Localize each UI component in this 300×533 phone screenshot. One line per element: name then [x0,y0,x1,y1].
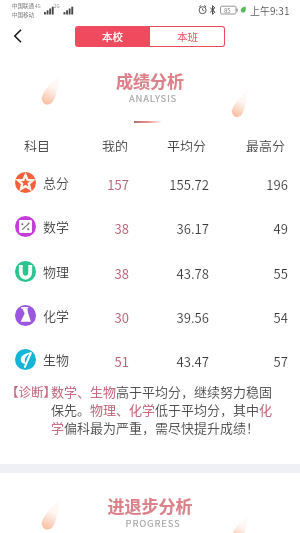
staticText: 上午9:31 [250,3,290,17]
button[interactable]: Back [6,24,30,48]
staticText: 数学 [43,217,70,236]
staticText: 36.17 [0,219,209,238]
staticText: 51 [0,352,129,371]
staticText: 55 [0,264,288,283]
staticText: 155.72 [0,175,209,194]
staticText: 物理 [43,262,70,281]
staticText: 生物 [43,350,70,369]
staticText: 39.56 [0,308,209,327]
staticText: 43.78 [0,264,209,283]
staticText: 化学 [43,306,70,325]
staticText: 平均分 [167,136,207,152]
staticText: 196 [0,175,288,194]
staticText: 进退步分析 [0,493,300,518]
staticText: 38 [0,264,129,283]
button[interactable]: 物理 [0,249,300,293]
button[interactable]: 数学 [0,204,300,248]
button[interactable]: 总分 [0,160,300,204]
staticText: ANALYSIS [3,91,300,105]
staticText: 最高分 [246,136,286,152]
staticText: 中国联通 [12,2,35,10]
staticText: 4G [35,3,41,10]
staticText: 38 [0,219,129,238]
staticText: 成绩分析 [0,68,300,93]
staticText: 科目 [24,136,51,152]
staticText: 本班 [177,29,198,44]
staticText: 中国移动 [12,11,35,19]
staticText: 【诊断】 [6,382,57,400]
button[interactable]: 化学 [0,293,300,337]
staticText: 本校 [102,29,123,44]
staticText: 43.47 [0,352,209,371]
staticText: 49 [0,219,288,238]
staticText: 57 [0,352,288,371]
staticText: 54 [0,308,288,327]
staticText: 30 [0,308,129,327]
button[interactable]: 本班 [150,27,224,46]
button[interactable]: 生物 [0,337,300,381]
staticText: 数学、生物高于平均分，继续努力稳固保先。物理、化学低于平均分，其中化学偏科最为严… [51,382,277,437]
button[interactable]: 本校 [75,26,150,47]
staticText: 157 [0,175,129,194]
staticText: 总分 [43,173,70,192]
staticText: 2G [54,3,60,10]
staticText: 我的 [102,136,129,152]
staticText: 85 [224,6,231,15]
staticText: PROGRESS [3,516,300,530]
